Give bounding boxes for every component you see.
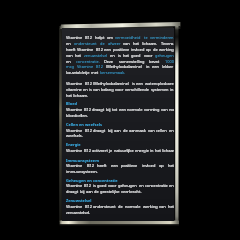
staticText: van [148,128,156,133]
staticText: activeert [92,148,109,153]
staticText: kauwtabletje [66,70,91,75]
staticText: wateroplosbare [145,81,174,86]
staticText: normale [125,204,142,209]
staticText: werking [159,47,174,52]
staticText: een [104,47,112,52]
staticText: is [89,87,93,92]
staticText: en [87,178,93,183]
staticText: helpt [95,35,106,40]
staticText: B12 [85,81,93,86]
staticText: geestelijke [100,189,121,194]
staticText: bloedcellen. [66,113,88,118]
staticText: het [133,41,140,46]
staticText: Bloed [66,101,77,106]
staticText: en [139,183,145,188]
staticText: verschillende [125,87,151,92]
staticText: op [159,163,165,168]
staticText: goed [97,183,108,188]
staticText: is [93,183,97,188]
staticText: van [159,204,167,209]
staticText: Vitamine [66,204,84,209]
staticText: en [79,122,85,127]
staticText: lekker [162,64,174,69]
staticText: Cellen [66,122,79,127]
staticText: invloed [142,163,157,168]
staticText: heeft [97,163,108,168]
staticText: aan [114,128,122,133]
staticText: Vitamine [66,107,84,112]
staticText: het [168,204,174,209]
staticText: natuurlijke [114,148,135,153]
staticText: en [169,128,174,133]
staticText: de [100,41,106,46]
staticText: met [91,70,100,75]
staticText: B12 [84,183,92,188]
staticText: normale [127,107,144,112]
staticText: bevat [149,59,161,64]
staticText: in [146,64,151,69]
staticText: van [93,87,101,92]
staticText: concentratie. [76,59,101,64]
staticText: concentratie [145,183,169,188]
staticText: vorming [144,107,161,112]
staticText: zenuwstelsel. [66,210,91,215]
staticText: (Methylcobalamine) [93,81,131,86]
staticText: voor [115,87,125,92]
staticText: van [123,41,131,46]
staticText: Vitamine [66,35,84,40]
staticText: een [136,81,144,86]
staticText: te [144,35,149,40]
staticText: in [150,148,155,153]
staticText: Deze [104,59,115,64]
staticText: bij [108,128,114,133]
staticText: aan [86,189,94,194]
staticText: ondersteunt [93,204,117,209]
staticText: je [109,148,114,153]
button[interactable]: Vitamine B12 product package [0,0,240,240]
staticText: zenuwstelsel [84,53,109,58]
staticText: B12 [96,47,104,52]
staticText: weefsels. [66,133,83,138]
staticText: rode [169,107,174,112]
staticText: in [170,87,174,92]
staticText: een [152,64,160,69]
staticText: voor [144,53,154,58]
staticText: geheugen [155,53,174,58]
staticText: de [153,47,159,52]
staticText: afweer [108,41,122,46]
staticText: draagt [93,128,107,133]
staticText: Vitamine [66,183,84,188]
staticText: verminderen [150,35,174,40]
staticText: vitamine [66,87,83,92]
staticText: Geheugen [66,178,87,183]
staticText: samenstelling [119,59,146,64]
staticText: de [123,128,129,133]
staticText: invloed [131,47,146,52]
staticText: 1000 [165,59,174,64]
staticText: Vitamine [66,81,84,86]
staticText: B12 [87,163,95,168]
staticText: B12 [85,35,93,40]
staticText: het [168,163,174,168]
staticText: bij [106,107,112,112]
staticText: lichaam. [73,93,89,98]
staticText: immuunsysteem. [66,169,98,174]
staticText: weefsels [85,122,102,127]
staticText: tot [112,107,119,112]
staticText: mcg [66,64,75,69]
staticText: is [118,53,122,58]
staticText: Vitamine [66,148,84,153]
staticText: om [107,35,114,40]
staticText: en [66,59,72,64]
staticText: Energie [66,142,81,147]
staticText: bij [80,189,86,194]
staticText: veerkracht. [121,189,142,194]
staticText: B12 [84,107,92,112]
staticText: kersensmaak. [100,70,126,75]
staticText: het [155,148,162,153]
staticText: de [94,189,100,194]
staticText: aanmaak [129,128,147,133]
staticText: heeft [66,47,77,52]
staticText: de [118,204,124,209]
staticText: Immuunsysteem [66,158,99,163]
